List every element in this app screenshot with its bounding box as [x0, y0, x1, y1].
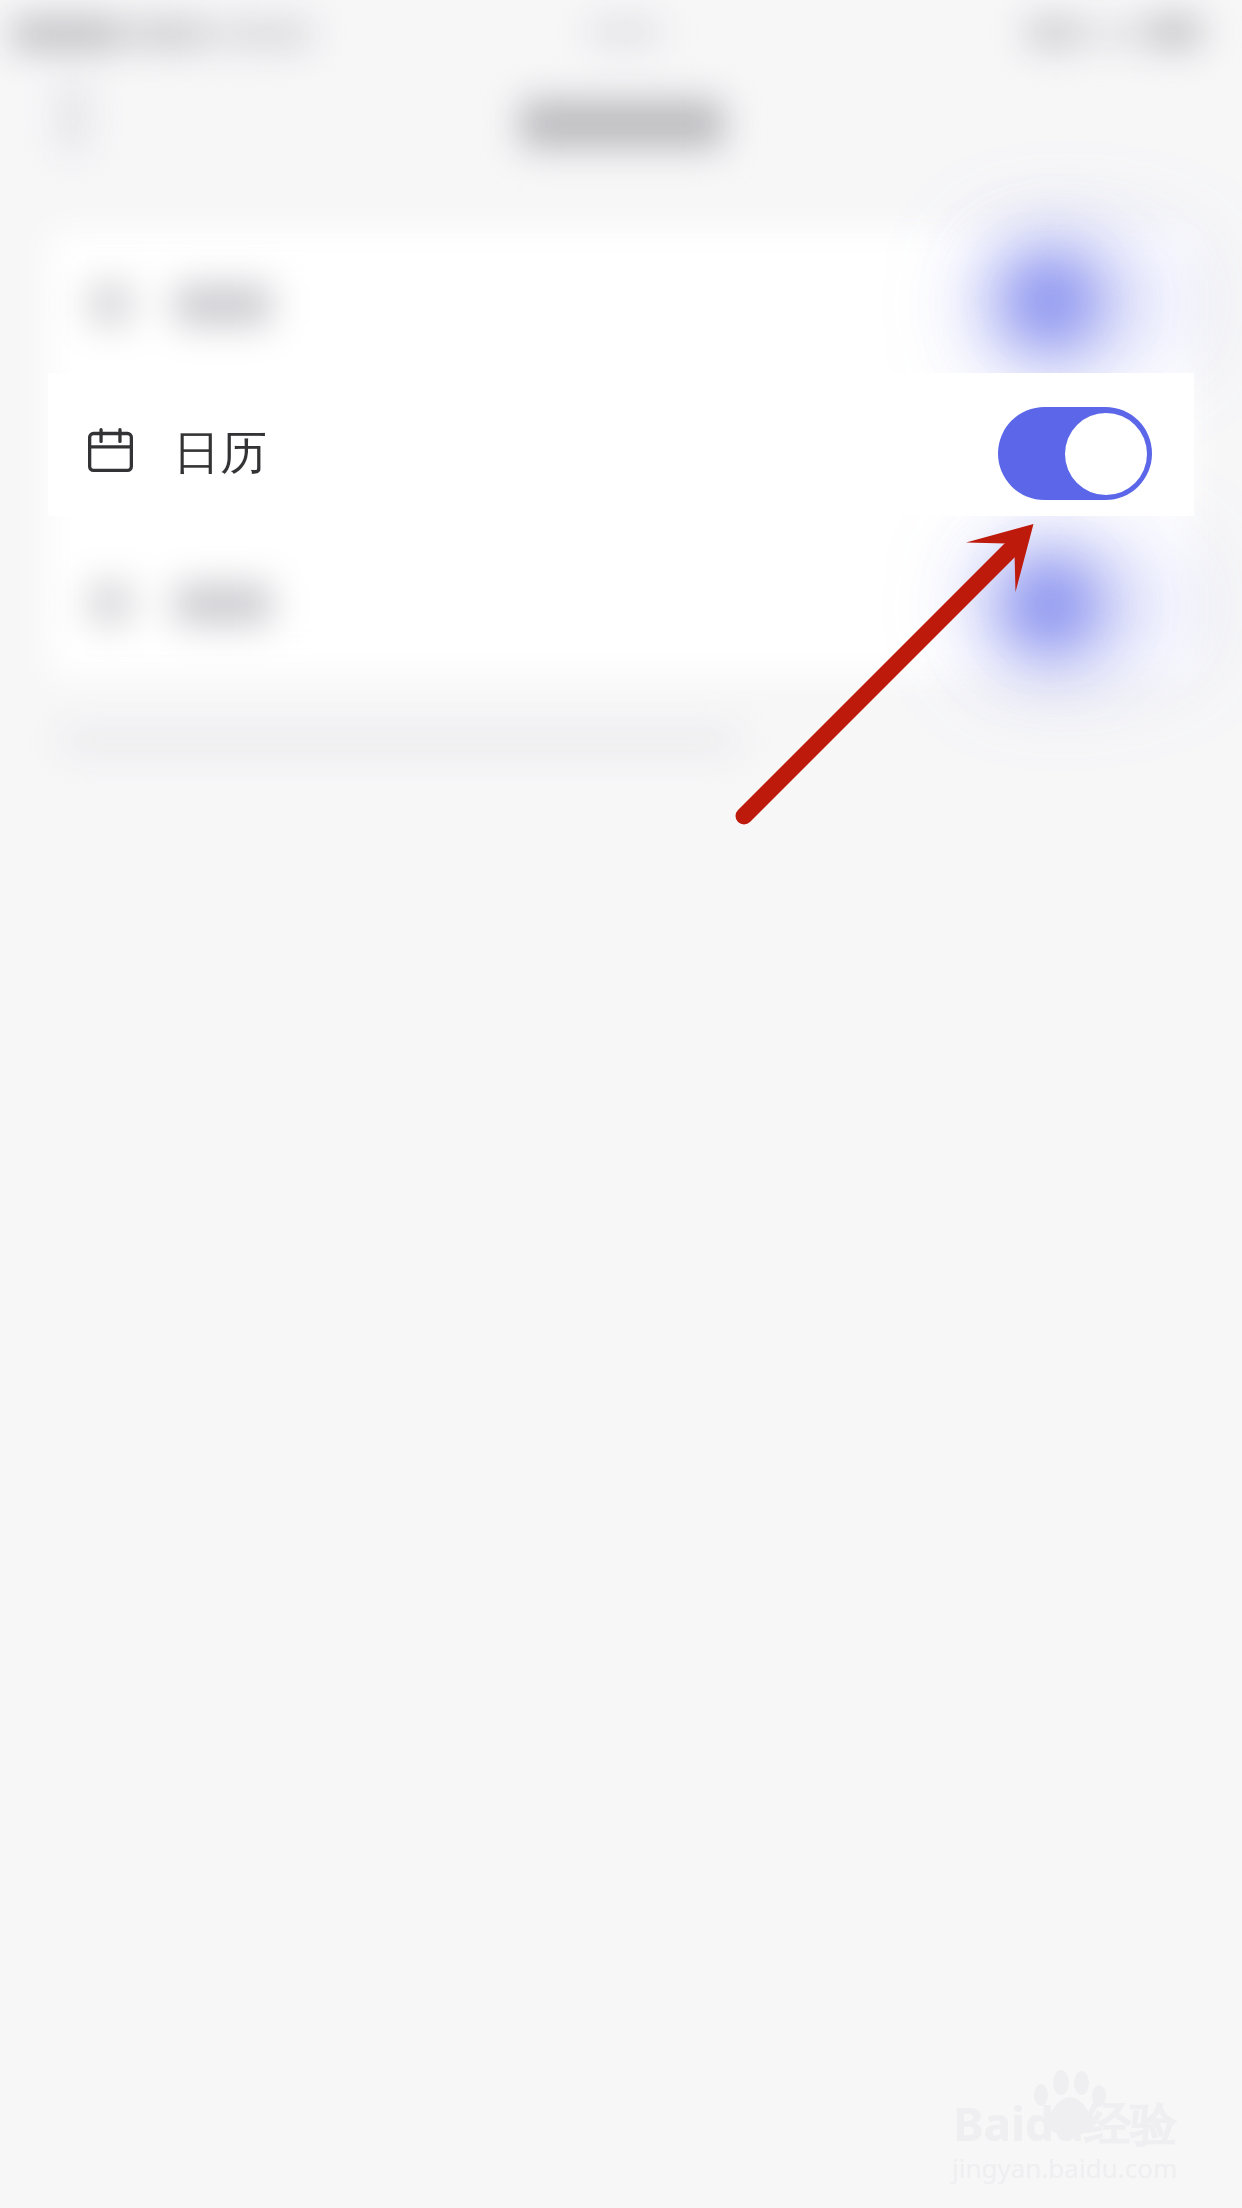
staticText: Baidu经验 — [953, 2092, 1176, 2155]
button[interactable]: Calendar switch, on — [998, 407, 1152, 500]
button[interactable]: 日历 — [48, 373, 1194, 516]
staticText: 日历 — [173, 424, 267, 483]
